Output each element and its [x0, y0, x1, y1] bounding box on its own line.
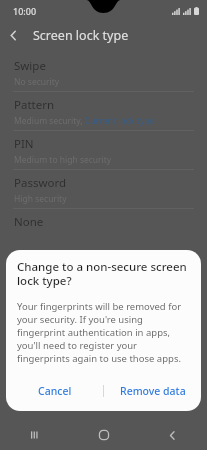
button[interactable]: Password [0, 170, 207, 208]
button[interactable]: PIN [0, 131, 207, 169]
staticText: Medium to high security [14, 154, 112, 166]
staticText: 10:00 [13, 5, 37, 17]
button[interactable]: Cancel [6, 374, 103, 408]
staticText: Remove data [120, 384, 186, 398]
staticText: Pattern [14, 97, 55, 113]
button[interactable]: Pattern [0, 92, 207, 130]
staticText: None [14, 214, 44, 230]
button[interactable]: Recents [0, 420, 69, 450]
button[interactable]: Back [0, 22, 26, 48]
button[interactable]: Remove data [104, 374, 201, 408]
staticText: Password [14, 175, 67, 191]
staticText: High security [14, 193, 67, 205]
staticText: Screen lock type [33, 27, 129, 44]
staticText: Your fingerprints will be removed for yo… [17, 300, 190, 365]
staticText: Medium security, Current lock type [14, 115, 155, 127]
staticText: No security [14, 76, 60, 88]
staticText: Cancel [38, 384, 72, 398]
staticText: PIN [14, 136, 34, 152]
staticText: Change to a non-secure screen lock type? [17, 259, 190, 288]
staticText: Swipe [14, 58, 46, 74]
button[interactable]: Back [138, 420, 207, 450]
button[interactable]: Swipe [0, 53, 207, 91]
button[interactable]: Home [69, 420, 138, 450]
